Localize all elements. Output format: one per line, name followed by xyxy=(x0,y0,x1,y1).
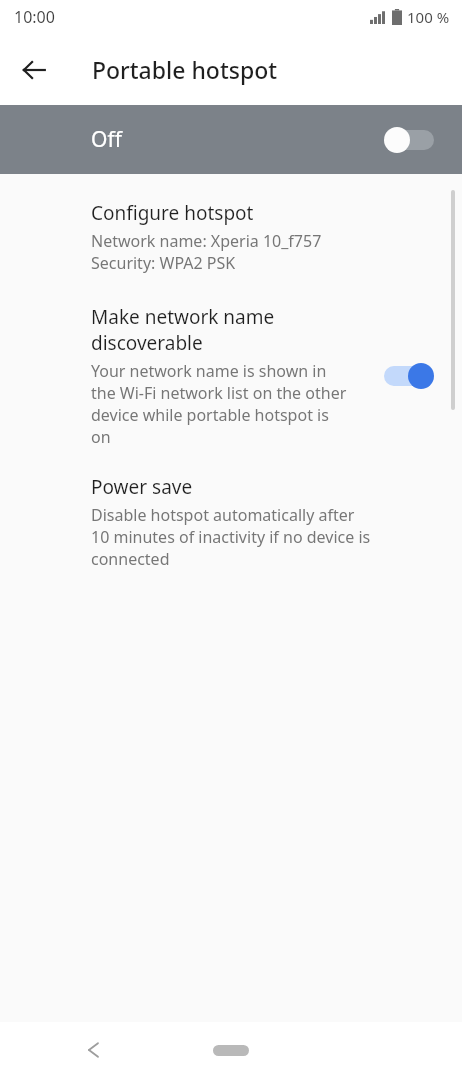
button[interactable]: Back xyxy=(10,46,58,94)
staticText: 100 % xyxy=(407,7,450,27)
staticText: 10 minutes of inactivity if no device is xyxy=(91,526,371,548)
staticText: Off xyxy=(91,125,122,154)
staticText: Power save xyxy=(91,474,193,500)
staticText: the Wi-Fi network list on the other xyxy=(91,382,347,404)
staticText: on xyxy=(91,426,111,448)
staticText: Your network name is shown in xyxy=(91,360,327,382)
button[interactable]: Home xyxy=(201,1035,261,1065)
staticText: Disable hotspot automatically after xyxy=(91,504,355,526)
button[interactable]: Off xyxy=(0,105,462,174)
staticText: Portable hotspot xyxy=(92,54,278,85)
staticText: Make network name xyxy=(91,304,275,330)
staticText: Security: WPA2 PSK xyxy=(91,252,236,274)
button[interactable]: Power save xyxy=(0,472,462,572)
staticText: device while portable hotspot is xyxy=(91,404,329,426)
staticText: discoverable xyxy=(91,330,203,356)
staticText: connected xyxy=(91,548,170,570)
button[interactable]: Make network name xyxy=(0,302,462,450)
button[interactable]: Back xyxy=(72,1028,116,1072)
staticText: Configure hotspot xyxy=(91,200,254,226)
button[interactable]: Configure hotspot xyxy=(0,198,462,276)
staticText: Network name: Xperia 10_f757 xyxy=(91,230,322,252)
staticText: 10:00 xyxy=(14,6,55,28)
